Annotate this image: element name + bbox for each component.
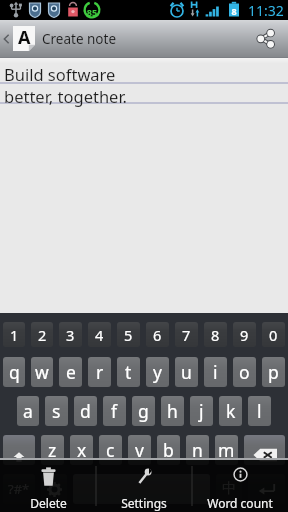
- button[interactable]: i: [204, 357, 227, 387]
- staticText: z: [48, 438, 57, 462]
- button[interactable]: x: [70, 435, 93, 465]
- button[interactable]: o: [233, 357, 256, 387]
- staticText: Delete: [30, 495, 67, 511]
- button[interactable]: h: [161, 396, 184, 426]
- staticText: Settings: [121, 495, 167, 511]
- staticText: t: [125, 360, 132, 384]
- button[interactable]: 8: [204, 322, 227, 347]
- button[interactable]: 3: [59, 322, 82, 347]
- button[interactable]: q: [3, 357, 25, 387]
- button[interactable]: r: [88, 357, 111, 387]
- button[interactable]: 中: [216, 474, 242, 504]
- staticText: 0: [269, 325, 278, 345]
- staticText: Word count: [207, 495, 273, 511]
- staticText: o: [239, 360, 250, 384]
- button[interactable]: p: [262, 357, 285, 387]
- button[interactable]: Word count: [192, 460, 288, 512]
- button[interactable]: g: [132, 396, 155, 426]
- button[interactable]: s: [45, 396, 68, 426]
- staticText: l: [257, 399, 262, 423]
- staticText: j: [199, 399, 204, 423]
- staticText: u: [181, 360, 192, 384]
- staticText: 1: [10, 325, 19, 345]
- staticText: m: [218, 438, 235, 462]
- button[interactable]: t: [117, 357, 140, 387]
- staticText: x: [77, 438, 87, 462]
- button[interactable]: A: [0, 20, 125, 57]
- staticText: 11:32: [248, 1, 284, 20]
- button[interactable]: Backspace: [244, 435, 285, 465]
- button[interactable]: e: [59, 357, 82, 387]
- button[interactable]: n: [186, 435, 209, 465]
- button[interactable]: m: [215, 435, 238, 465]
- staticText: 中: [222, 480, 236, 498]
- staticText: i: [213, 360, 218, 384]
- staticText: 85: [229, 5, 239, 25]
- button[interactable]: 6: [146, 322, 169, 347]
- button[interactable]: d: [74, 396, 97, 426]
- staticText: n: [192, 438, 203, 462]
- button[interactable]: 5: [117, 322, 140, 347]
- staticText: 6: [153, 325, 162, 345]
- button[interactable]: a: [17, 396, 39, 426]
- button[interactable]: 0: [262, 322, 285, 347]
- staticText: 85: [85, 6, 99, 18]
- button[interactable]: Settings: [96, 460, 192, 512]
- button[interactable]: b: [157, 435, 180, 465]
- button[interactable]: Delete: [0, 460, 96, 512]
- staticText: d: [80, 399, 91, 423]
- button[interactable]: l: [248, 396, 271, 426]
- button[interactable]: 1: [3, 322, 25, 347]
- button[interactable]: u: [175, 357, 198, 387]
- staticText: b: [163, 438, 174, 462]
- staticText: Create note: [42, 30, 117, 48]
- button[interactable]: k: [219, 396, 242, 426]
- button[interactable]: f: [103, 396, 126, 426]
- button[interactable]: [248, 474, 285, 504]
- staticText: 3: [66, 325, 75, 345]
- staticText: ?#*: [8, 480, 30, 498]
- button[interactable]: w: [31, 357, 53, 387]
- button[interactable]: y: [146, 357, 169, 387]
- staticText: c: [106, 438, 115, 462]
- button[interactable]: Share: [242, 20, 288, 57]
- staticText: 8: [211, 325, 220, 345]
- staticText: 9: [240, 325, 249, 345]
- staticText: f: [111, 399, 118, 423]
- staticText: v: [135, 438, 144, 462]
- staticText: Build software: [4, 63, 116, 85]
- staticText: a: [23, 399, 33, 423]
- button[interactable]: [41, 474, 67, 504]
- button[interactable]: Shift: [3, 435, 35, 465]
- staticText: better, together.: [4, 85, 128, 107]
- staticText: p: [268, 360, 279, 384]
- button[interactable]: ?#*: [3, 474, 35, 504]
- button[interactable]: 7: [175, 322, 198, 347]
- button[interactable]: 4: [88, 322, 111, 347]
- button[interactable]: 2: [31, 322, 53, 347]
- staticText: s: [52, 399, 61, 423]
- staticText: 7: [182, 325, 191, 345]
- staticText: r: [96, 360, 104, 384]
- staticText: g: [138, 399, 149, 423]
- button[interactable]: [73, 474, 210, 504]
- staticText: w: [35, 360, 49, 384]
- staticText: y: [153, 360, 162, 384]
- staticText: k: [226, 399, 236, 423]
- staticText: e: [66, 360, 76, 384]
- button[interactable]: 9: [233, 322, 256, 347]
- staticText: q: [9, 360, 20, 384]
- button[interactable]: v: [128, 435, 151, 465]
- button[interactable]: z: [41, 435, 64, 465]
- staticText: 5: [124, 325, 133, 345]
- button[interactable]: c: [99, 435, 122, 465]
- button[interactable]: j: [190, 396, 213, 426]
- staticText: h: [167, 399, 178, 423]
- staticText: 4: [95, 325, 104, 345]
- staticText: 2: [38, 325, 47, 345]
- staticText: A: [18, 25, 31, 50]
